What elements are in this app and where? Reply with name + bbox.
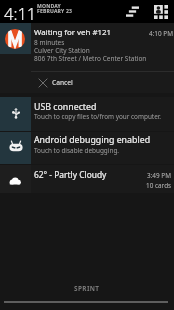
button[interactable]: Cancel [0,72,174,93]
staticText: 806 7th Street / Metro Center Station [34,54,147,63]
staticText: 62° - Partly Cloudy [34,169,107,180]
other: Signal strength [126,6,139,17]
button[interactable]: USB connected [0,97,174,131]
button[interactable]: 62° - Partly Cloudy [0,165,174,193]
button[interactable]: Android debugging enabled [0,132,174,164]
staticText: Culver City Station [34,46,90,55]
staticText: 3:49 PM [147,171,172,180]
staticText: Cancel [52,78,73,87]
staticText: 8 minutes [34,38,65,47]
button[interactable]: Quick settings [154,5,168,18]
staticText: USB connected [34,101,97,113]
staticText: MONDAY [37,3,61,10]
staticText: 10 cards [146,181,172,190]
staticText: Android debugging enabled [34,134,151,146]
staticText: 4:10 PM [149,29,174,38]
staticText: Touch to copy files to/from your compute… [34,112,162,121]
staticText: FEBRUARY 23 [37,8,73,15]
staticText: 4:11 [4,2,37,24]
staticText: Touch to disable debugging. [34,146,120,155]
staticText: Waiting for veh #121 [34,27,112,38]
button[interactable]: Waiting for veh #121 [0,23,174,72]
staticText: SPRINT [74,284,100,293]
